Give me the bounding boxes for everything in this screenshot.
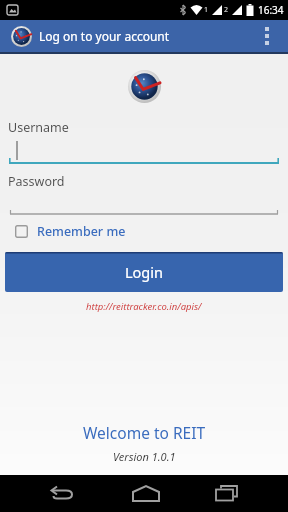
button[interactable] xyxy=(254,20,280,52)
button[interactable]: Remember me xyxy=(15,223,126,240)
button[interactable]: http://reittracker.co.in/apis/ xyxy=(0,300,288,313)
staticText: Login xyxy=(125,262,163,282)
button[interactable] xyxy=(121,475,171,512)
staticText: Log on to your account xyxy=(39,28,170,44)
staticText: 1 xyxy=(204,5,209,15)
staticText: Username xyxy=(8,119,69,136)
button[interactable] xyxy=(35,475,85,512)
button[interactable] xyxy=(201,475,251,512)
button[interactable] xyxy=(0,190,288,217)
button[interactable] xyxy=(0,136,288,165)
button[interactable]: Login xyxy=(5,252,283,292)
staticText: Version 1.0.1 xyxy=(113,449,176,464)
staticText: 16:34 xyxy=(258,3,284,17)
staticText: Remember me xyxy=(37,223,126,240)
staticText: http://reittracker.co.in/apis/ xyxy=(86,300,202,313)
staticText: Welcome to REIT xyxy=(83,422,206,443)
staticText: Password xyxy=(8,173,65,190)
staticText: 2 xyxy=(224,5,229,15)
